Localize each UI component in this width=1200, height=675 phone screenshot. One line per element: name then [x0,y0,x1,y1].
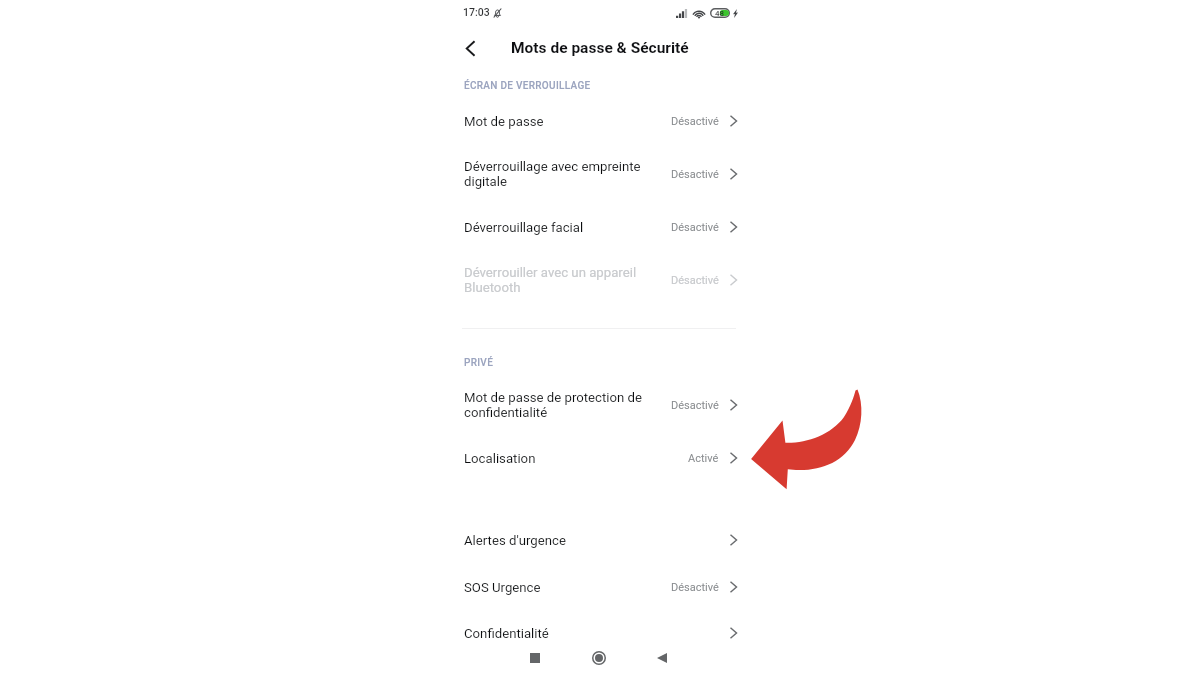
button[interactable]: Localisation [462,436,739,480]
button[interactable]: Mot de passe [462,99,739,143]
staticText: SOS Urgence [464,580,671,595]
staticText: Activé [688,452,719,465]
staticText: Alertes d'urgence [464,533,719,548]
staticText: Déverrouiller avec un appareil Bluetooth [464,265,671,296]
staticText: Localisation [464,451,688,466]
button[interactable]: Home [583,642,615,674]
staticText: Mots de passe & Sécurité [511,39,689,57]
staticText: Déverrouillage avec empreinte digitale [464,159,671,190]
button[interactable]: SOS Urgence [462,565,739,609]
button[interactable]: Alertes d'urgence [462,518,739,562]
button[interactable]: Déverrouillage avec empreinte digitale [462,150,739,198]
button[interactable]: Déverrouiller avec un appareil Bluetooth [462,256,739,304]
staticText: Désactivé [671,399,719,412]
staticText: Mot de passe [464,114,671,129]
staticText: Confidentialité [464,626,719,641]
button[interactable]: Mot de passe de protection de confidenti… [462,381,739,429]
staticText: Désactivé [671,221,719,234]
button[interactable]: Back [646,642,678,674]
staticText: Désactivé [671,274,719,287]
button[interactable]: Déverrouillage facial [462,205,739,249]
staticText: Désactivé [671,115,719,128]
button[interactable]: Recent apps [519,642,551,674]
staticText: PRIVÉ [464,357,494,369]
staticText: 17:03 [463,6,490,18]
staticText: ÉCRAN DE VERROUILLAGE [464,80,591,92]
staticText: Mot de passe de protection de confidenti… [464,390,671,421]
staticText: 48 [715,9,725,18]
staticText: Désactivé [671,581,719,594]
staticText: Déverrouillage facial [464,220,671,235]
staticText: Désactivé [671,168,719,181]
button[interactable]: Back [452,28,488,68]
button[interactable]: Confidentialité [462,611,739,655]
